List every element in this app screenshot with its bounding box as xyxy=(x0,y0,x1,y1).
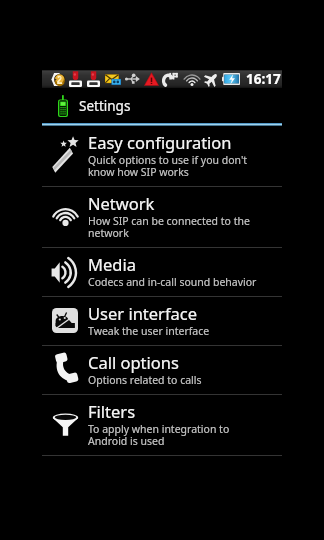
staticText: Call options xyxy=(88,351,179,373)
staticText: Network xyxy=(88,192,155,214)
button[interactable]: Easy configuration xyxy=(42,126,282,187)
staticText: User interface xyxy=(88,302,198,324)
staticText: How SIP can be connected to the network xyxy=(88,214,268,240)
staticText: Options related to calls xyxy=(88,373,202,387)
staticText: Codecs and in-call sound behavior xyxy=(88,275,257,289)
staticText: Filters xyxy=(88,400,136,422)
button[interactable]: Filters xyxy=(42,395,282,456)
staticText: Easy configuration xyxy=(88,131,232,153)
staticText: Quick options to use if you don't know h… xyxy=(88,153,268,179)
button[interactable]: Network xyxy=(42,187,282,248)
staticText: Tweak the user interface xyxy=(88,324,210,338)
button[interactable]: Call options xyxy=(42,346,282,395)
button[interactable]: Media xyxy=(42,248,282,297)
staticText: Media xyxy=(88,253,136,275)
staticText: Settings xyxy=(79,97,131,115)
button[interactable]: User interface xyxy=(42,297,282,346)
staticText: To apply when integration to Android is … xyxy=(88,422,268,448)
staticText: 16:17 xyxy=(246,70,281,88)
